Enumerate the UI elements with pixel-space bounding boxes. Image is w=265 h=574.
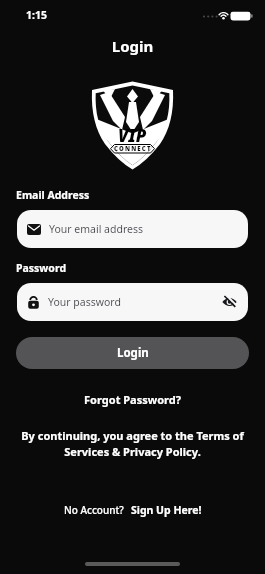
staticText: VIP bbox=[118, 124, 147, 147]
button[interactable]: Forgot Password? bbox=[0, 392, 265, 407]
staticText: Login bbox=[117, 345, 149, 361]
staticText: Your password bbox=[48, 295, 222, 309]
staticText: No Account? bbox=[64, 503, 124, 517]
staticText: CONNECT bbox=[114, 145, 152, 153]
staticText: Password bbox=[16, 261, 67, 275]
staticText: Sign Up Here! bbox=[131, 503, 202, 517]
staticText: Your email address bbox=[49, 222, 144, 236]
button[interactable]: No Account? bbox=[0, 503, 265, 517]
staticText: 1:15 bbox=[26, 8, 47, 22]
button[interactable]: Your password bbox=[17, 283, 248, 321]
staticText: Email Address bbox=[16, 188, 90, 202]
button[interactable]: Your email address bbox=[17, 210, 248, 248]
button[interactable]: Login bbox=[16, 337, 249, 369]
staticText: Login bbox=[0, 36, 265, 56]
staticText: By continuing, you agree to the Terms of… bbox=[0, 428, 265, 459]
